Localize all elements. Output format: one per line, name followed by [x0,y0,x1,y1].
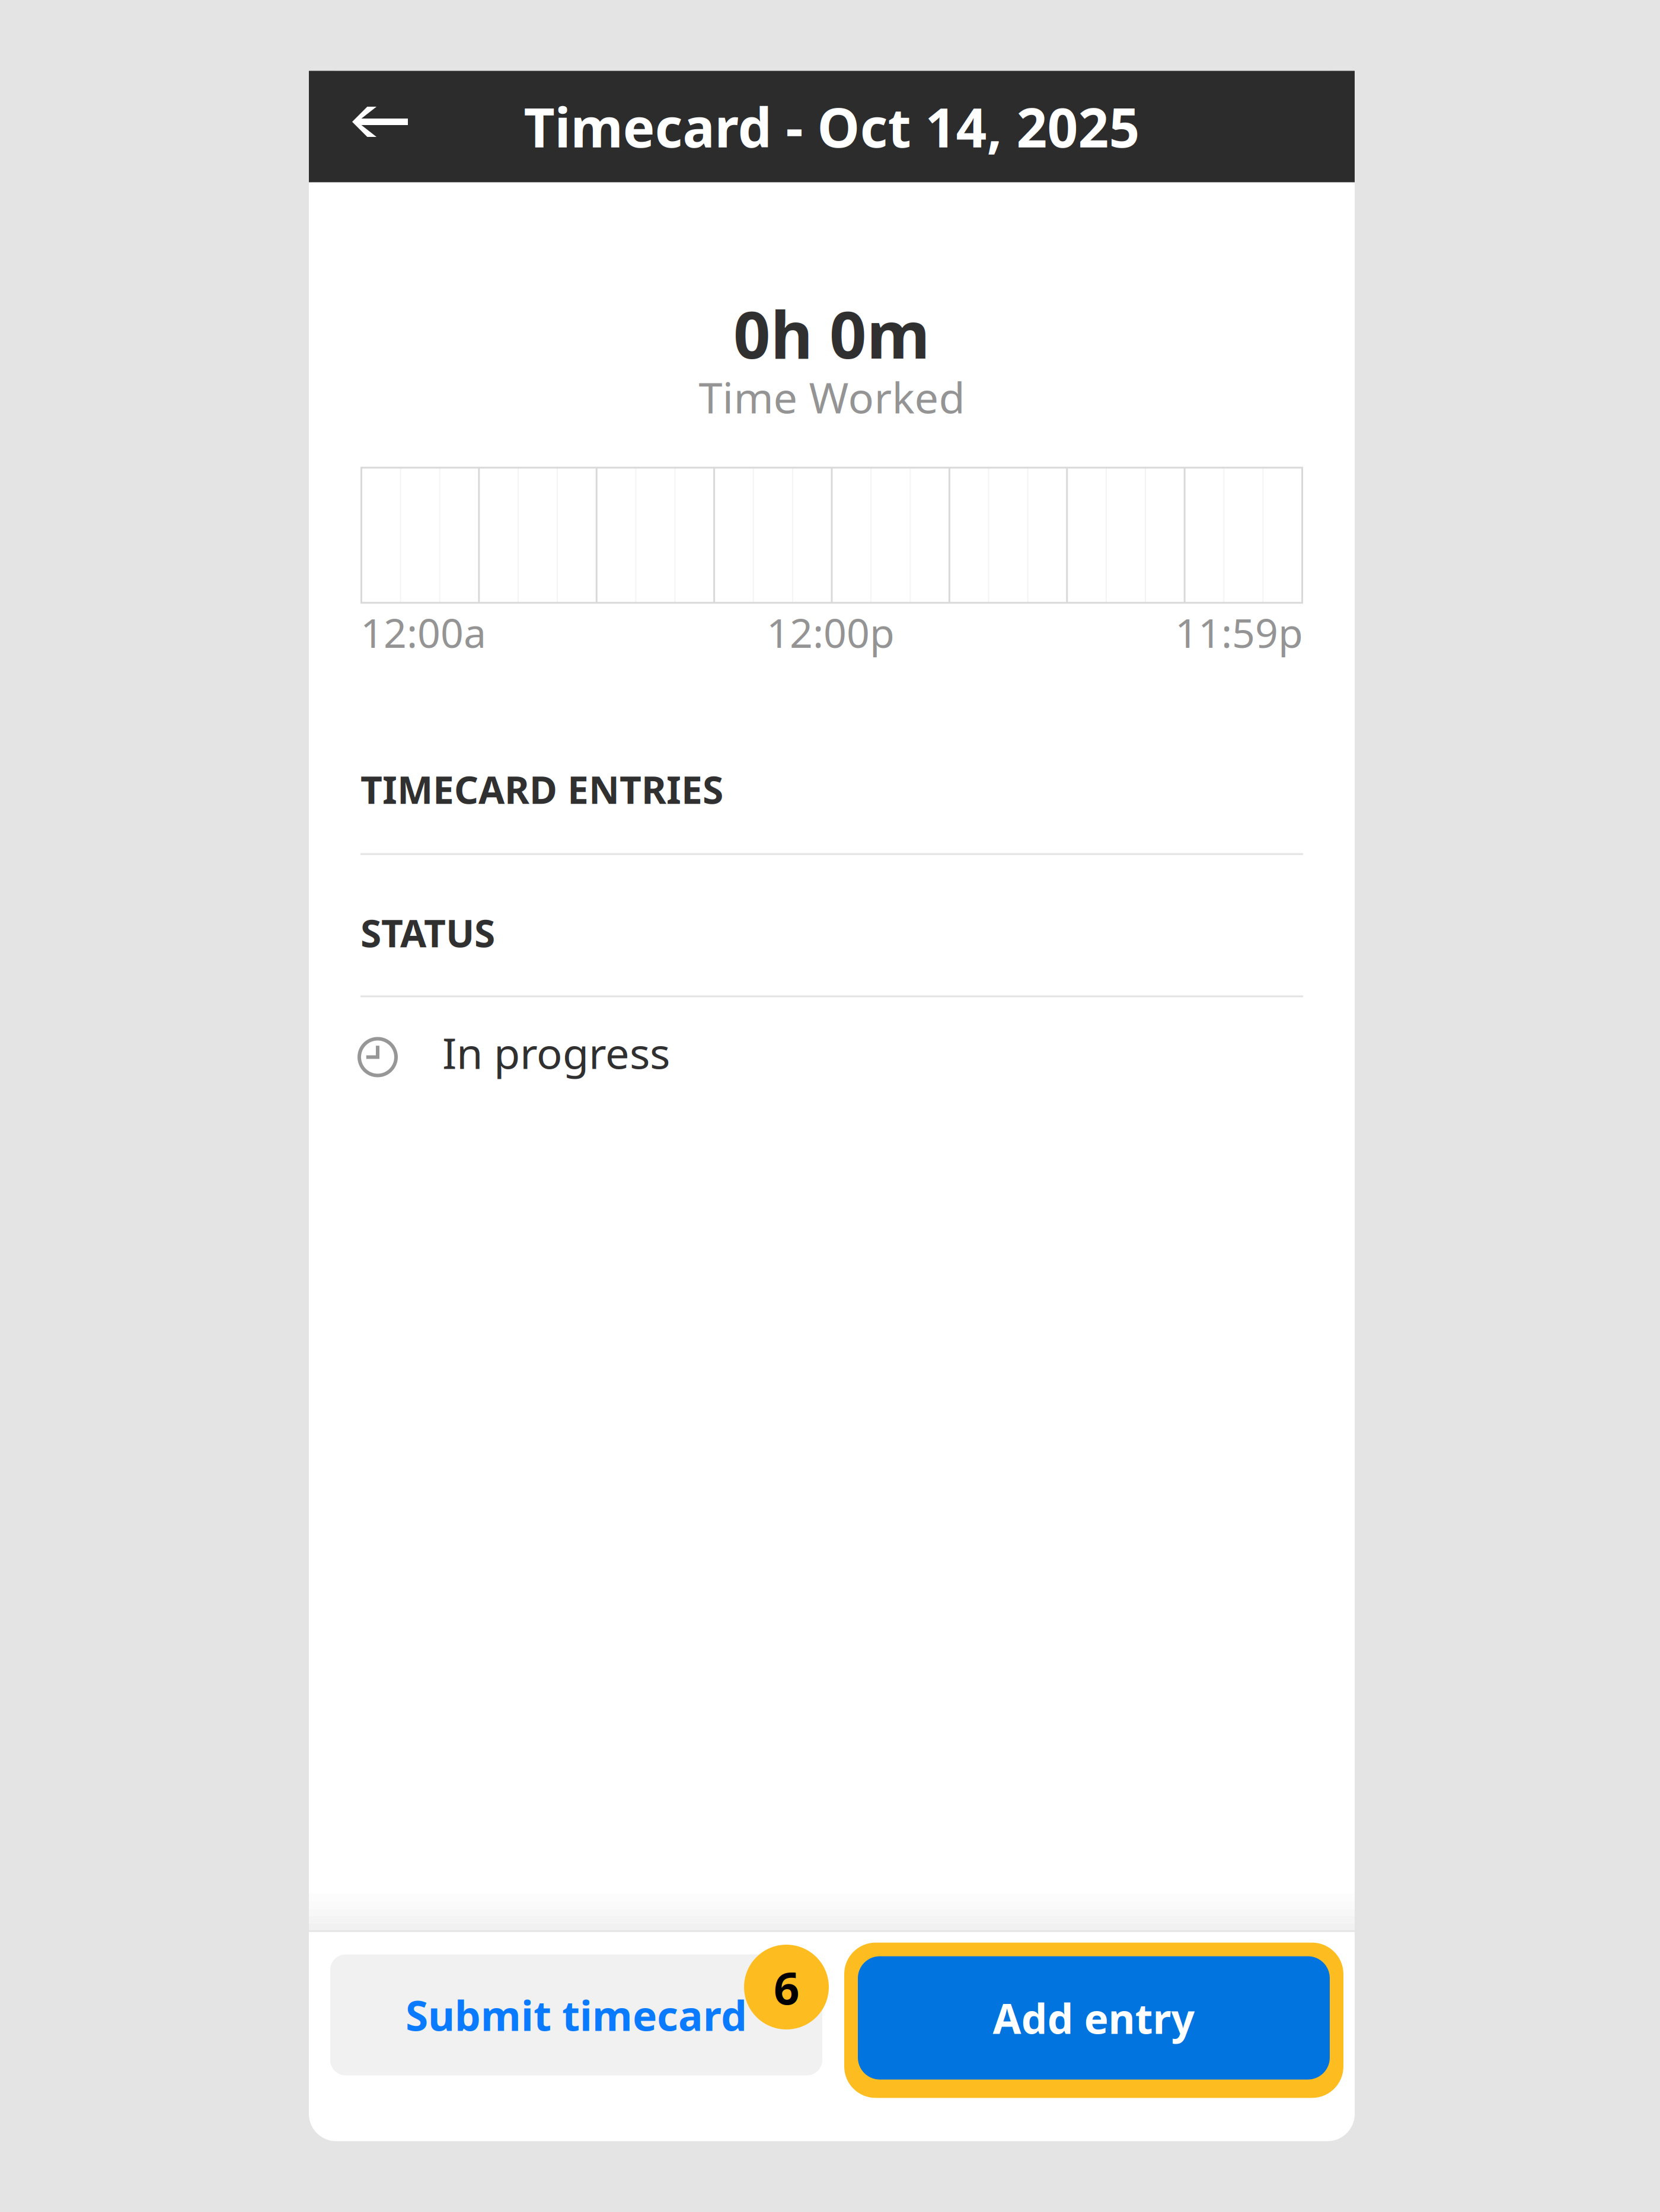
button[interactable]: Back [309,71,451,182]
staticText: Time Worked [699,368,965,425]
button[interactable]: Submit timecard [330,1960,822,2081]
staticText: 6 [774,1957,799,2017]
staticText: In progress [442,1024,670,1081]
staticText: Add entry [993,1991,1195,2045]
staticText: 12:00p [767,605,895,659]
staticText: STATUS [360,907,495,958]
staticText: Timecard - Oct 14, 2025 [524,91,1140,162]
button[interactable]: Add entry [844,1943,1343,2098]
staticText: 0h 0m [733,290,930,376]
staticText: Submit timecard [406,1988,747,2042]
staticText: TIMECARD ENTRIES [360,764,723,814]
staticText: 11:59p [1175,605,1303,659]
staticText: 12:00a [360,605,486,659]
